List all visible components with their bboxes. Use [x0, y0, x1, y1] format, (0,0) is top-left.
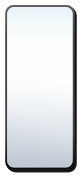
- button[interactable]: Tempered glass screen protector product …: [0, 0, 81, 180]
